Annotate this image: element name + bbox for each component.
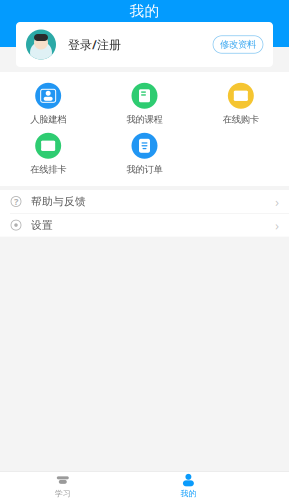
- staticText: 我的: [129, 2, 159, 20]
- button[interactable]: 在线购卡: [193, 84, 289, 124]
- staticText: ›: [275, 193, 279, 210]
- button[interactable]: 我的订单: [96, 134, 193, 174]
- staticText: 帮助与反馈: [31, 195, 86, 208]
- staticText: 我的订单: [126, 164, 162, 175]
- staticText: 人脸建档: [30, 114, 66, 125]
- staticText: 我的课程: [126, 114, 162, 125]
- button[interactable]: 我的课程: [96, 84, 193, 124]
- button[interactable]: 人脸建档: [0, 84, 96, 124]
- staticText: ›: [275, 216, 279, 234]
- staticText: 学习: [55, 489, 71, 498]
- button[interactable]: 学习: [38, 474, 88, 498]
- staticText: 设置: [31, 218, 53, 232]
- staticText: 我的: [180, 489, 196, 498]
- staticText: 修改资料: [220, 39, 256, 50]
- staticText: 在线购卡: [223, 114, 259, 125]
- button[interactable]: 设置: [0, 214, 289, 237]
- button[interactable]: ?: [0, 190, 289, 213]
- button[interactable]: 在线排卡: [0, 134, 96, 174]
- staticText: 在线排卡: [30, 164, 66, 175]
- button[interactable]: 登录/注册: [16, 22, 273, 67]
- staticText: ?: [14, 195, 18, 208]
- staticText: 登录/注册: [68, 36, 121, 52]
- button[interactable]: 我的: [163, 474, 213, 498]
